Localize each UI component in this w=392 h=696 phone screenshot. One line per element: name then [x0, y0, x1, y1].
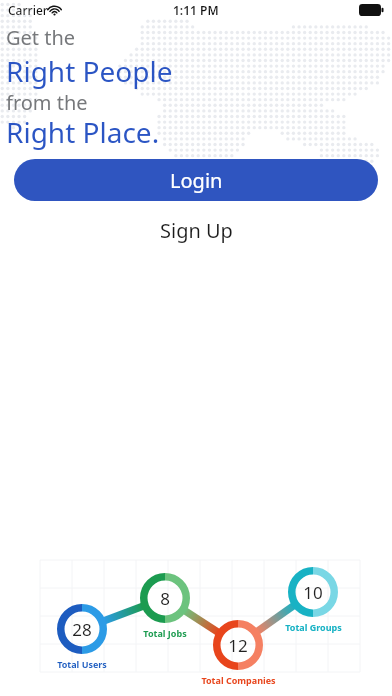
staticText: 10: [303, 581, 323, 603]
staticText: Sign Up: [160, 217, 233, 244]
staticText: 28: [72, 618, 92, 640]
staticText: Total Groups: [285, 621, 342, 633]
staticText: Get the: [6, 24, 76, 51]
staticText: 12: [228, 634, 248, 656]
staticText: 8: [160, 587, 170, 609]
staticText: Total Users: [57, 658, 107, 670]
staticText: Login: [170, 167, 223, 194]
staticText: Total Jobs: [143, 627, 187, 639]
staticText: Right People: [6, 52, 173, 90]
staticText: from the: [6, 89, 88, 116]
button[interactable]: Login: [14, 159, 378, 201]
staticText: Total Companies: [201, 674, 276, 686]
button[interactable]: Sign Up: [136, 214, 256, 246]
staticText: Right Place.: [6, 113, 160, 151]
staticText: 1:11 PM: [173, 2, 219, 18]
staticText: Carrier: [8, 2, 48, 18]
